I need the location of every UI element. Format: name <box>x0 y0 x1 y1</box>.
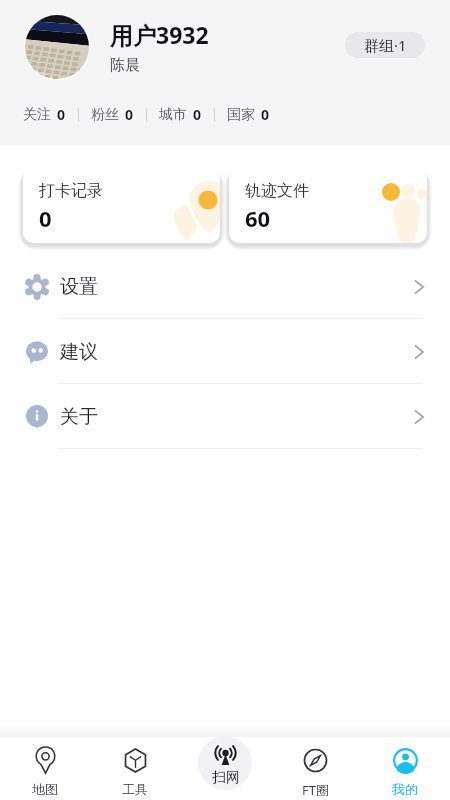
staticText: 扫网 <box>212 769 240 787</box>
button[interactable]: About <box>0 384 450 449</box>
staticText: 工具 <box>122 781 148 797</box>
staticText: 地图 <box>32 781 58 797</box>
other: FT圈 <box>303 747 328 774</box>
staticText: 关注 <box>23 106 51 124</box>
staticText: 关于 <box>60 405 98 429</box>
button[interactable]: 工具 <box>90 737 180 800</box>
staticText: 0 <box>39 203 52 233</box>
button[interactable]: 粉丝 <box>91 105 134 124</box>
button[interactable]: 我的 <box>360 737 450 800</box>
other: Settings <box>25 275 49 299</box>
staticText: 国家 <box>227 106 255 124</box>
button[interactable]: FT圈 <box>270 737 360 800</box>
staticText: 粉丝 <box>91 106 119 124</box>
button[interactable]: 打卡记录 <box>23 169 220 243</box>
button[interactable]: 群组·1 <box>345 32 425 58</box>
staticText: 陈晨 <box>110 56 140 75</box>
other: 地图 <box>33 747 58 774</box>
button[interactable]: Settings <box>0 254 450 319</box>
staticText: 0 <box>193 105 202 124</box>
button[interactable]: 轨迹文件 <box>229 169 427 243</box>
button[interactable]: 城市 <box>159 105 202 124</box>
button[interactable]: 关注 <box>23 105 66 124</box>
staticText: 用户3932 <box>110 19 209 50</box>
button[interactable]: 扫网 <box>198 736 252 790</box>
other: 工具 <box>123 747 148 774</box>
staticText: 0 <box>57 105 66 124</box>
staticText: 设置 <box>60 275 98 299</box>
button[interactable]: 地图 <box>0 737 90 800</box>
staticText: 打卡记录 <box>39 181 103 201</box>
staticText: FT圈 <box>302 781 329 799</box>
staticText: 我的 <box>392 781 418 797</box>
other: 我的 <box>393 747 418 774</box>
staticText: 60 <box>245 203 271 233</box>
staticText: 群组·1 <box>364 35 407 55</box>
button[interactable]: 国家 <box>227 105 270 124</box>
staticText: 0 <box>125 105 134 124</box>
button[interactable]: Suggestions <box>0 319 450 384</box>
other: Suggestions <box>25 340 49 364</box>
staticText: 建议 <box>60 340 98 364</box>
button[interactable]: Profile photo <box>25 15 89 79</box>
other: About <box>25 405 49 429</box>
staticText: 城市 <box>159 106 187 124</box>
staticText: 轨迹文件 <box>245 181 309 201</box>
staticText: 0 <box>261 105 270 124</box>
